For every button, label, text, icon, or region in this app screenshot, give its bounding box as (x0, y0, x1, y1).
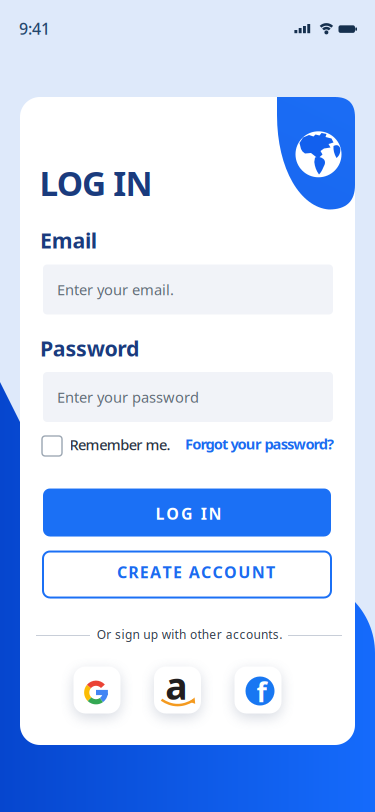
staticText: E (140, 561, 149, 583)
staticText: A (150, 561, 161, 583)
button[interactable]: Remember me. (69, 435, 170, 454)
button[interactable]: a (154, 666, 201, 713)
staticText: Enter your email. (57, 280, 174, 299)
staticText: LOG IN (39, 161, 152, 205)
staticText: C (117, 561, 127, 583)
staticText: Or sign up with other accounts. (97, 626, 282, 642)
staticText: N (208, 503, 221, 524)
staticText: T (162, 561, 171, 583)
staticText: U (238, 561, 250, 583)
staticText: C (201, 561, 211, 583)
button[interactable]: Enter your email. (43, 264, 333, 314)
staticText: Forgot your password? (185, 434, 334, 453)
staticText: N (252, 561, 265, 583)
staticText: O (224, 561, 237, 583)
staticText: Remember me. (69, 435, 170, 454)
button[interactable]: L (43, 488, 331, 536)
staticText: 9:41 (19, 18, 50, 39)
staticText: Password (40, 334, 139, 362)
button[interactable] (73, 666, 120, 713)
staticText: R (128, 561, 138, 583)
staticText: A (189, 561, 200, 583)
staticText: C (212, 561, 222, 583)
staticText: L (155, 503, 164, 524)
staticText: Email (40, 226, 97, 254)
staticText: G (181, 503, 193, 524)
staticText: a (165, 660, 187, 710)
staticText: O (166, 503, 179, 524)
staticText: I (201, 503, 207, 524)
button[interactable]: C (43, 551, 331, 597)
staticText: Enter your password (57, 387, 199, 407)
button[interactable]: f (234, 666, 281, 713)
staticText: E (173, 561, 182, 583)
button[interactable]: Enter your password (43, 372, 333, 422)
staticText: f (256, 674, 266, 710)
staticText: T (266, 561, 275, 583)
button[interactable]: Forgot your password? (42, 434, 334, 453)
button[interactable] (42, 436, 62, 456)
